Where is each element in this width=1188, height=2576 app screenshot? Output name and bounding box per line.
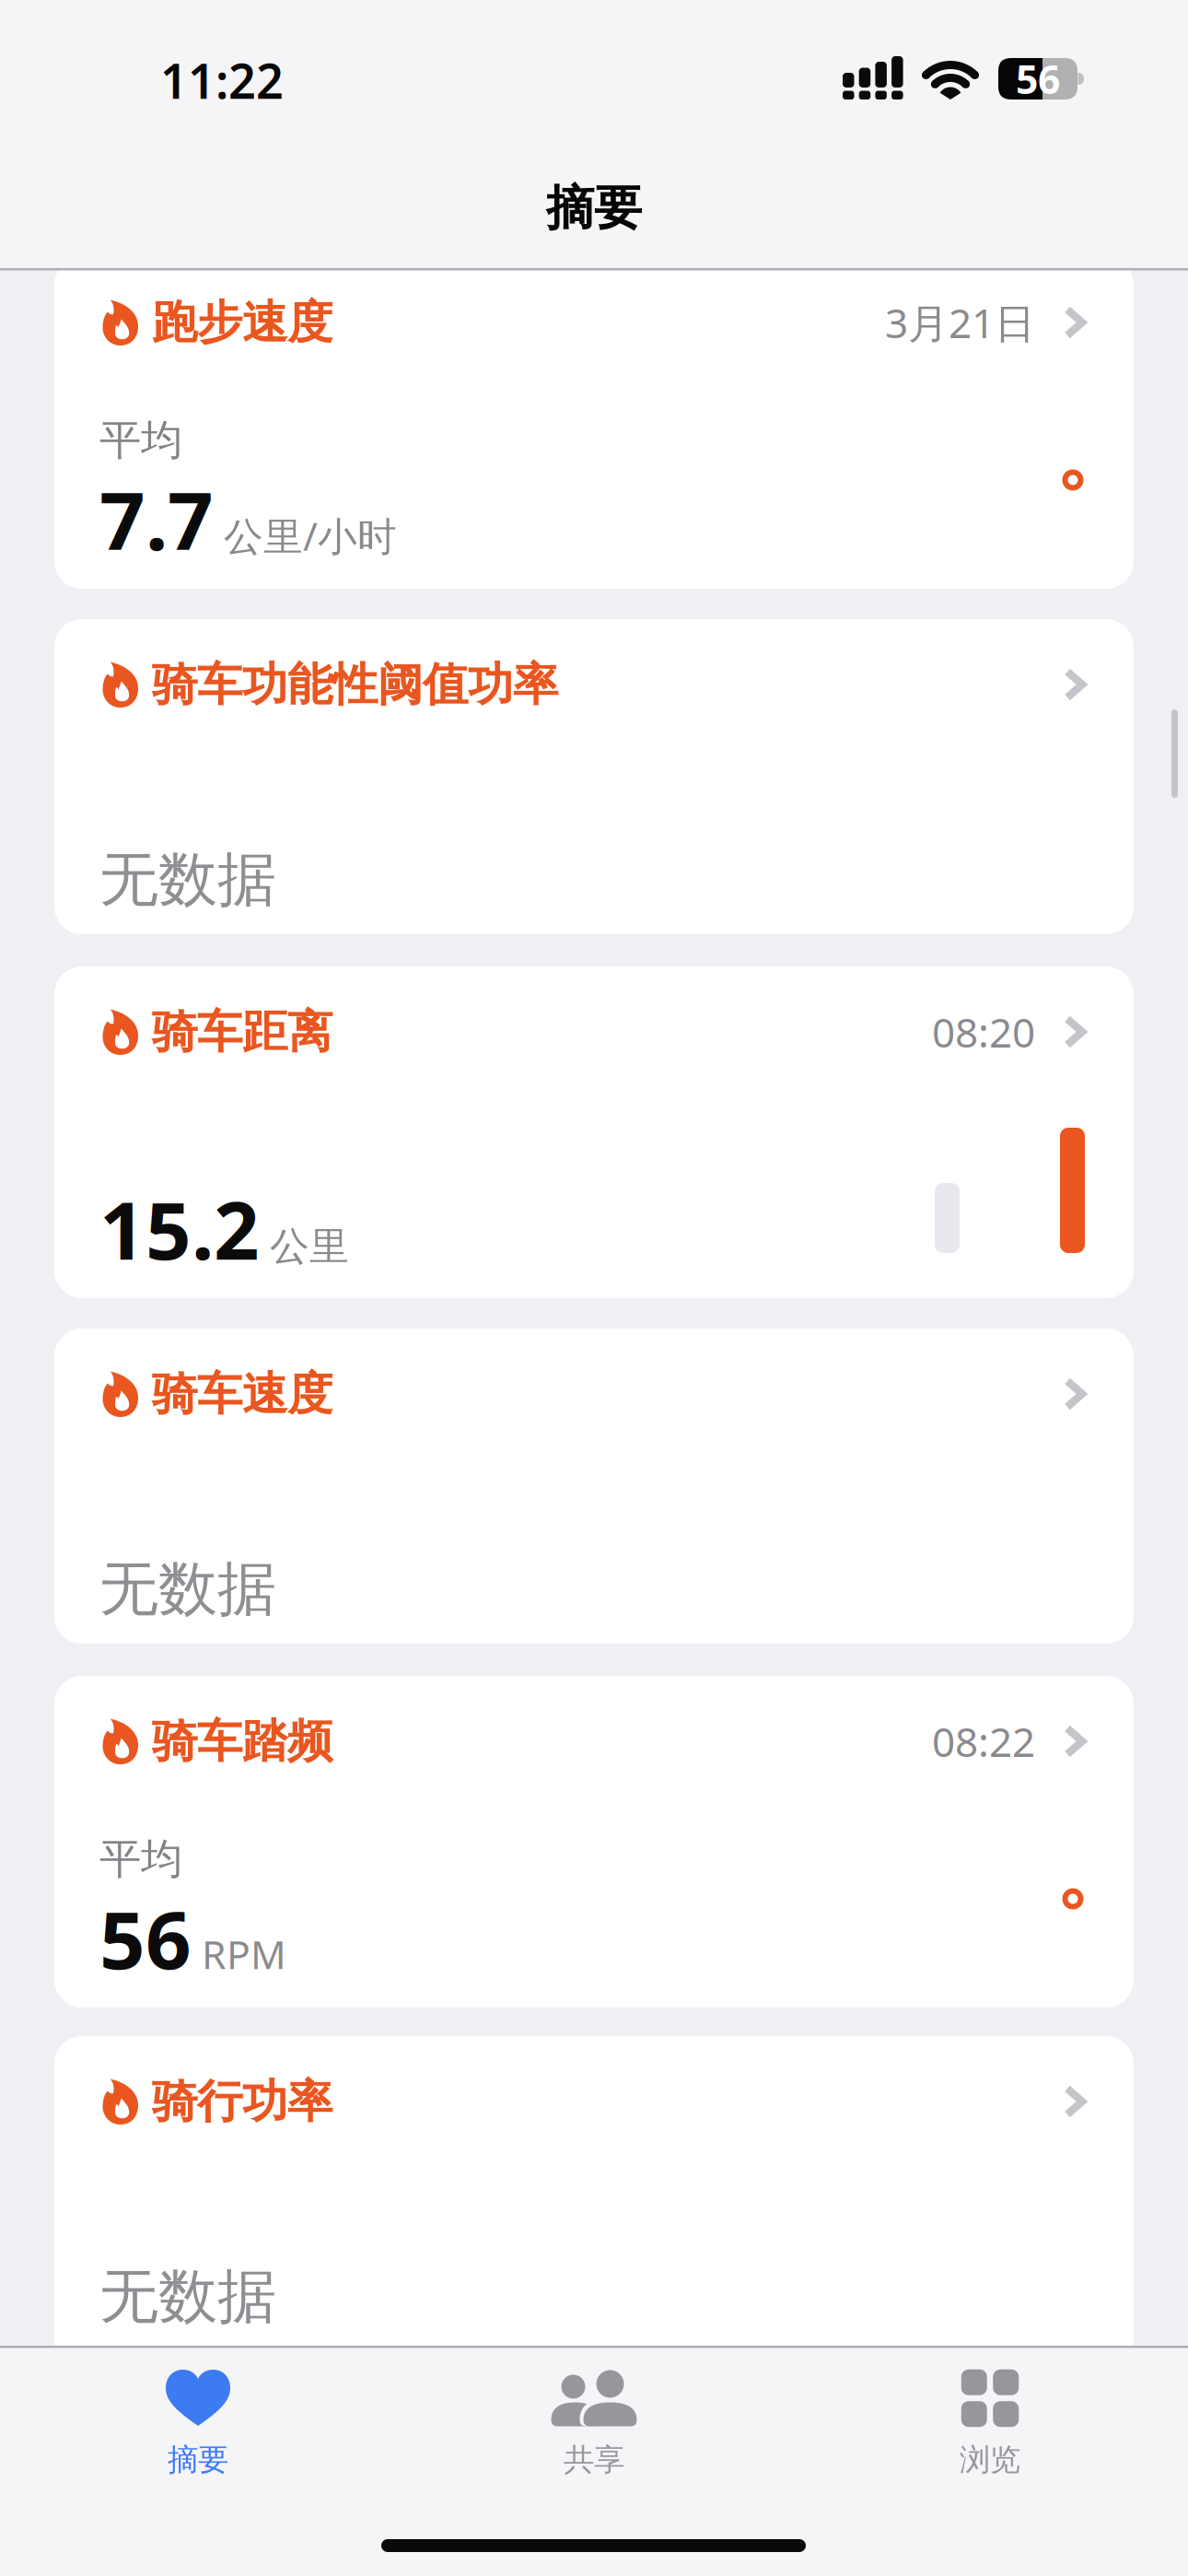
staticText: 骑车踏频 (152, 1713, 332, 1769)
staticText: 骑车距离 (152, 1004, 332, 1060)
staticText: 无数据 (99, 1553, 276, 1625)
button[interactable]: 骑车功能性阈值功率 (54, 619, 1134, 934)
button[interactable]: 骑车距离 (54, 966, 1134, 1298)
staticText: 平均 (99, 1834, 182, 1885)
staticText: 08:20 (932, 1005, 1035, 1059)
staticText: 08:22 (932, 1714, 1035, 1768)
staticText: 无数据 (99, 844, 276, 916)
staticText: RPM (202, 1928, 286, 1980)
staticText: 7.7 (99, 466, 214, 572)
staticText: 平均 (99, 415, 182, 466)
staticText: 摘要 (168, 2441, 228, 2479)
staticText: 跑步速度 (152, 295, 332, 350)
button[interactable]: 骑车速度 (54, 1329, 1134, 1644)
button[interactable]: 共享 (456, 2369, 732, 2480)
staticText: 15.2 (99, 1176, 260, 1282)
staticText: 3月21日 (885, 296, 1035, 349)
staticText: 56 (99, 1885, 192, 1991)
staticText: 共享 (564, 2441, 624, 2479)
button[interactable]: 浏览 (852, 2369, 1128, 2480)
staticText: 公里/小时 (224, 509, 397, 562)
staticText: 浏览 (960, 2441, 1020, 2479)
button[interactable]: 摘要 (60, 2369, 336, 2480)
staticText: 56 (1016, 53, 1060, 105)
button[interactable]: 骑车踏频 (54, 1676, 1134, 2008)
staticText: 骑车功能性阈值功率 (152, 657, 558, 712)
staticText: 公里 (270, 1222, 349, 1271)
staticText: 摘要 (546, 179, 642, 238)
staticText: 骑车速度 (152, 1366, 332, 1422)
button[interactable]: 骑行功率 (54, 2036, 1134, 2386)
button[interactable]: 跑步速度 (54, 257, 1134, 589)
staticText: 骑行功率 (152, 2074, 332, 2129)
staticText: 无数据 (99, 2261, 276, 2333)
staticText: 11:22 (160, 48, 284, 112)
